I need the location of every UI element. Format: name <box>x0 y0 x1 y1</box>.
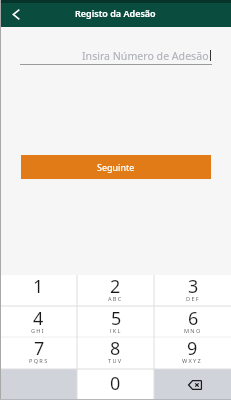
button[interactable]: 2 <box>77 275 154 306</box>
button[interactable]: Seguinte <box>21 155 211 179</box>
staticText: Insira Número de Adesão <box>82 49 209 63</box>
button[interactable]: Backspace <box>154 369 231 400</box>
staticText: 7 <box>34 336 45 361</box>
staticText: Registo da Adesão <box>75 7 156 19</box>
button[interactable]: 4 <box>0 306 77 337</box>
staticText: WXYZ <box>182 357 203 364</box>
button[interactable]: 9 <box>154 337 231 369</box>
staticText: PQRS <box>29 357 49 364</box>
staticText: GHI <box>31 327 46 333</box>
button[interactable]: 6 <box>154 306 231 337</box>
staticText: 0 <box>110 371 121 396</box>
staticText: 4 <box>33 306 44 331</box>
staticText: DEF <box>186 295 200 301</box>
button[interactable]: 0 <box>77 369 154 400</box>
staticText: JKL <box>110 327 122 333</box>
button[interactable]: Back <box>0 3 30 27</box>
staticText: MNO <box>184 327 202 333</box>
staticText: 5 <box>111 306 122 331</box>
button[interactable]: Blank key <box>0 369 77 400</box>
staticText: 6 <box>188 306 199 331</box>
staticText: 8 <box>110 336 121 361</box>
staticText: 2 <box>110 274 121 299</box>
staticText: 3 <box>188 274 199 299</box>
staticText: 9 <box>187 336 198 361</box>
staticText: ABC <box>108 295 123 301</box>
button[interactable]: 7 <box>0 337 77 369</box>
button[interactable]: 8 <box>77 337 154 369</box>
button[interactable]: 3 <box>154 275 231 306</box>
button[interactable]: 1 <box>0 275 77 306</box>
button[interactable]: 5 <box>77 306 154 337</box>
staticText: Seguinte <box>97 161 135 173</box>
staticText: TUV <box>108 357 123 364</box>
staticText: 1 <box>33 274 44 299</box>
